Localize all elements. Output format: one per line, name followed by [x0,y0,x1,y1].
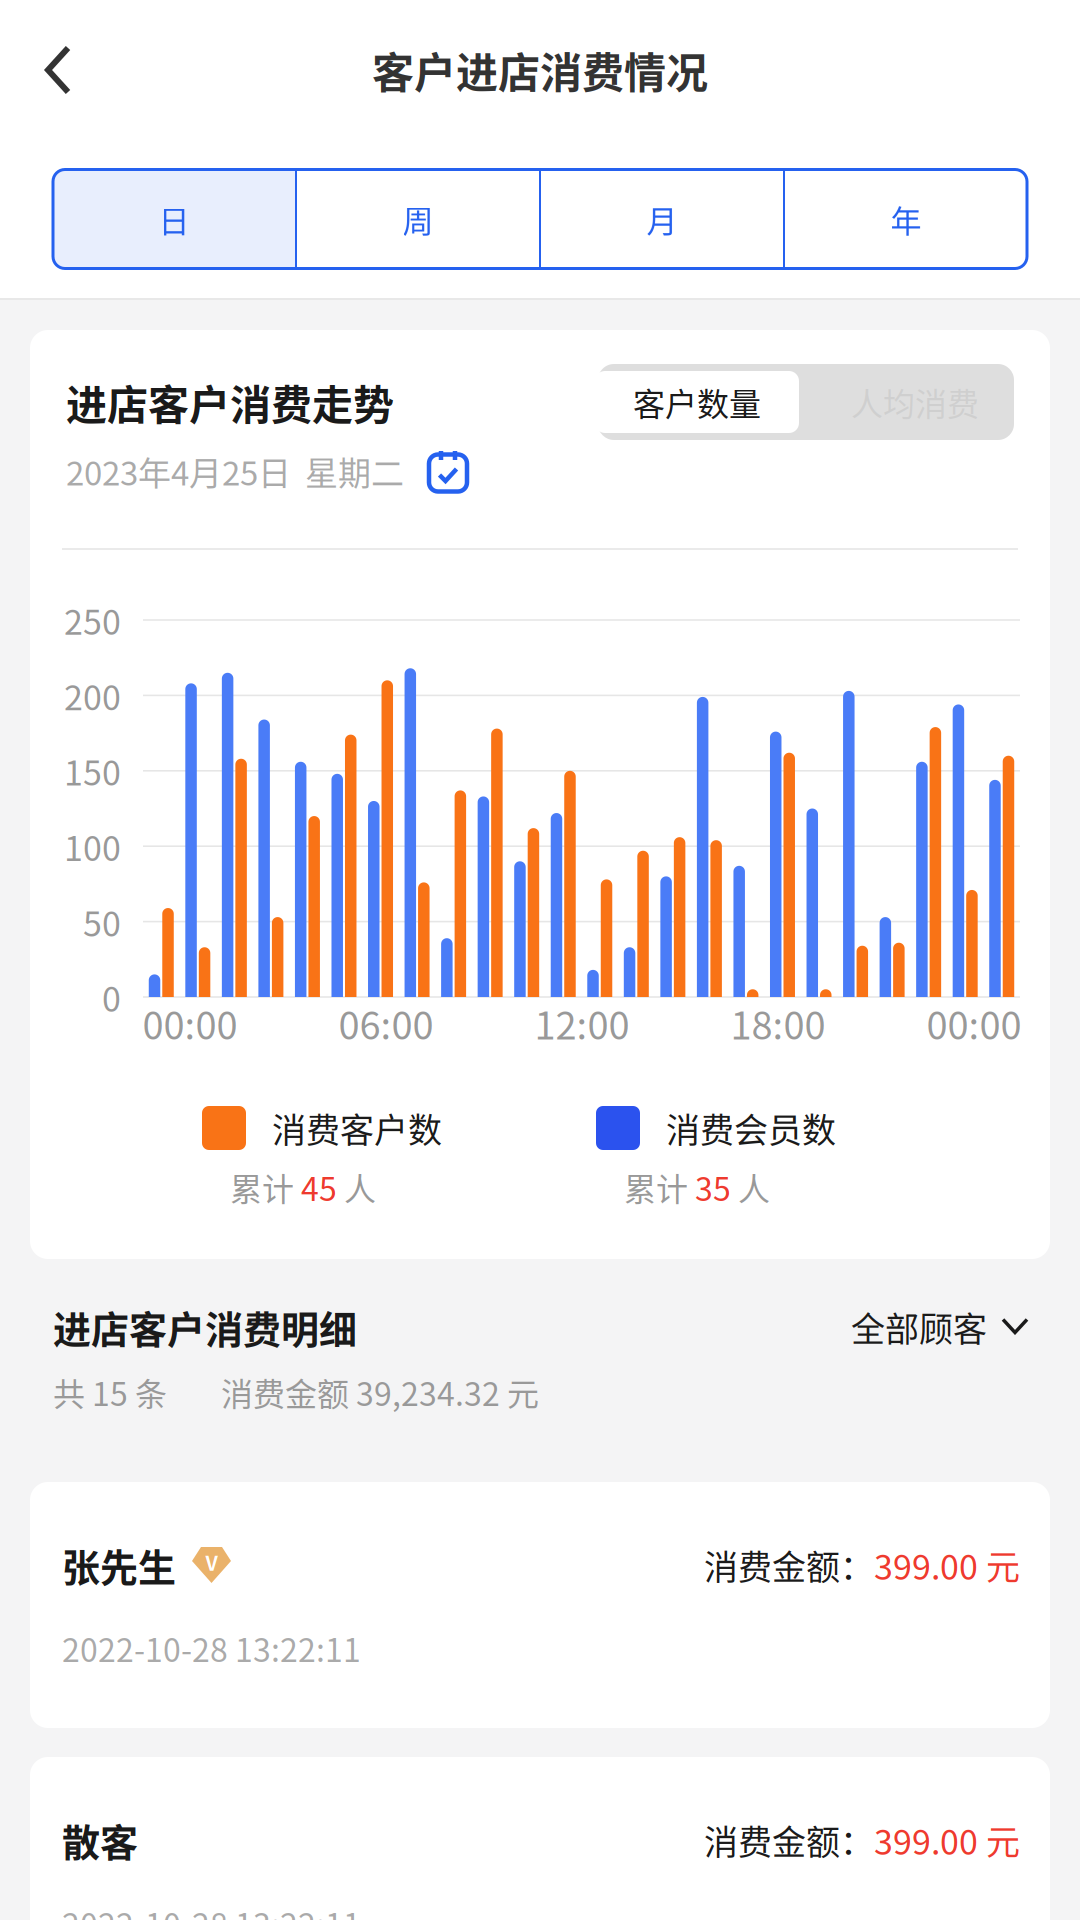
staticText: 250 [64,595,121,645]
staticText: 日 [158,197,189,241]
staticText: 全部顾客 [851,1302,987,1352]
staticText: 399.00 元 [874,1540,1020,1590]
staticText: 12:00 [534,995,629,1050]
staticText: 消费客户数 [272,1103,442,1153]
staticText: 2022-10-28 13:22:11 [62,1625,361,1671]
button[interactable]: 客户数量 [588,364,806,440]
button[interactable]: 月 [541,169,783,268]
staticText: 2023年4月25日 星期二 [66,447,404,495]
button[interactable]: 日 [53,169,295,268]
staticText: 人 [337,1164,376,1210]
staticText: 消费金额： [704,1540,874,1590]
staticText: 周 [402,197,433,241]
staticText: 消费金额 39,234.32 元 [221,1369,539,1415]
staticText: 200 [64,671,121,720]
staticText: V [205,1547,217,1576]
staticText: 张先生 [62,1537,176,1592]
button[interactable]: 人均消费 [806,364,1024,440]
staticText: 399.00 元 [874,1815,1020,1865]
button[interactable]: 散客 [30,1757,1050,1920]
staticText: 人 [731,1164,770,1210]
button[interactable]: 年 [785,169,1027,268]
staticText: 累计 [624,1164,695,1210]
button[interactable]: 返回 [0,40,102,100]
button[interactable]: 全部顾客 [851,1302,1027,1352]
staticText: 进店客户消费明细 [53,1299,357,1354]
staticText: 客户进店消费情况 [372,40,708,100]
staticText: 100 [64,822,121,871]
staticText: 散客 [62,1812,138,1867]
staticText: 客户数量 [633,379,761,425]
staticText: 35 [695,1164,731,1210]
staticText: 月 [646,197,677,241]
button[interactable]: 周 [297,169,539,268]
staticText: 00:00 [926,995,1021,1050]
staticText: 50 [83,897,121,946]
staticText: 00:00 [142,995,237,1050]
staticText: 消费金额： [704,1815,874,1865]
staticText: 消费会员数 [666,1103,836,1153]
button[interactable]: 选择日期 [426,448,470,494]
staticText: 45 [301,1164,337,1210]
staticText: 共 15 条 [53,1369,167,1415]
staticText: 进店客户消费走势 [66,372,394,432]
staticText: 累计 [230,1164,301,1210]
button[interactable]: 张先生 [30,1482,1050,1728]
staticText: 2022-10-28 13:22:11 [62,1900,361,1920]
staticText: 18:00 [730,995,825,1050]
staticText: 150 [64,746,121,795]
staticText: 0 [102,972,121,1022]
staticText: 人均消费 [851,379,979,425]
staticText: 年 [890,197,921,241]
staticText: 06:00 [338,995,433,1050]
